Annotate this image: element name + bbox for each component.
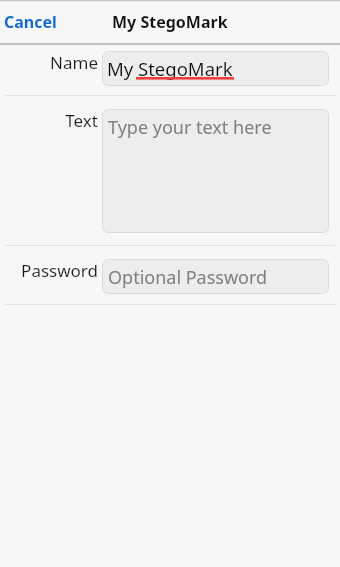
staticText: Cancel (4, 11, 57, 33)
staticText: Type your text here (108, 115, 272, 140)
button[interactable]: Cancel (4, 11, 57, 33)
staticText: Name (50, 51, 98, 74)
staticText: Text (65, 109, 98, 132)
button[interactable]: Password field (102, 259, 329, 294)
staticText: My StegoMark (107, 56, 233, 81)
button[interactable]: Name field (102, 51, 329, 86)
staticText: My StegoMark (112, 11, 228, 33)
button[interactable]: Text field (102, 109, 329, 233)
staticText: Password (21, 259, 98, 282)
staticText: Optional Password (108, 265, 268, 290)
